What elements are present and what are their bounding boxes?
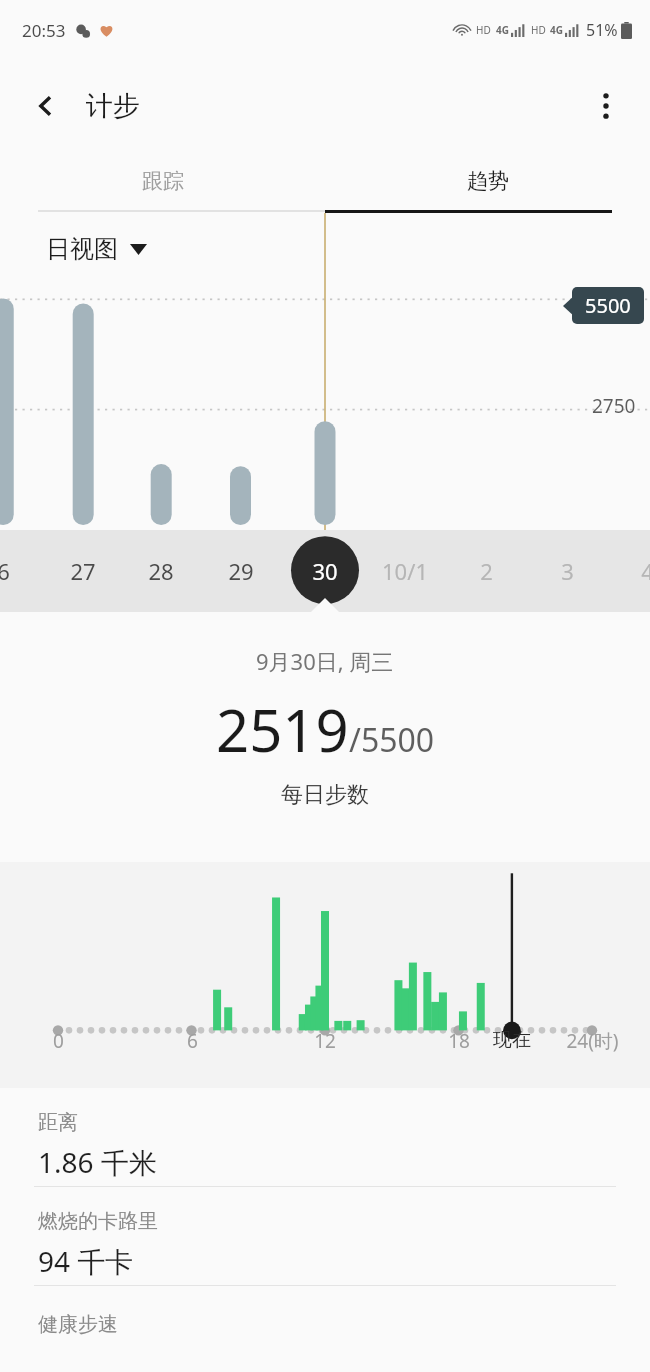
staticText: 计步 (86, 89, 140, 123)
staticText: HD (531, 23, 546, 37)
staticText: 2519 (216, 690, 349, 769)
staticText: 12 (314, 1028, 336, 1054)
staticText: 2750 (592, 393, 636, 419)
staticText: 6 (187, 1028, 198, 1054)
staticText: /5500 (349, 718, 435, 762)
staticText: 27 (70, 556, 96, 586)
button[interactable]: 4 (612, 530, 650, 612)
button[interactable]: 2 (451, 530, 521, 612)
button[interactable]: 跟踪 (0, 152, 325, 210)
staticText: 3 (561, 556, 574, 586)
staticText: HD (476, 23, 491, 37)
staticText: 9月30日, 周三 (256, 646, 394, 676)
staticText: 10/1 (382, 556, 428, 586)
button[interactable]: 30 (290, 530, 360, 612)
button[interactable]: 燃烧的卡路里 (0, 1187, 650, 1285)
button[interactable]: More options (584, 84, 628, 128)
staticText: 1.86 千米 (38, 1143, 157, 1181)
staticText: 4G (496, 23, 509, 37)
staticText: 0 (53, 1028, 64, 1054)
staticText: 51% (586, 19, 618, 41)
button[interactable]: 10/1 (370, 530, 440, 612)
staticText: 趋势 (467, 168, 509, 194)
staticText: 28 (148, 556, 174, 586)
staticText: 跟踪 (142, 168, 184, 194)
staticText: 5500 (585, 292, 631, 319)
button[interactable]: 3 (532, 530, 602, 612)
staticText: 距离 (38, 1110, 78, 1135)
button[interactable]: 健康步速 (0, 1286, 650, 1366)
button[interactable]: 27 (48, 530, 118, 612)
staticText: 6 (0, 556, 10, 586)
staticText: 现在 (493, 1028, 531, 1052)
staticText: 24(时) (566, 1028, 619, 1054)
button[interactable]: 日视图 (46, 234, 147, 264)
button[interactable]: 趋势 (325, 152, 650, 210)
button[interactable]: 28 (126, 530, 196, 612)
staticText: 4 (641, 556, 650, 586)
staticText: 94 千卡 (38, 1242, 134, 1280)
button[interactable]: Back (24, 84, 68, 128)
staticText: 日视图 (46, 234, 118, 264)
staticText: 燃烧的卡路里 (38, 1209, 158, 1234)
staticText: 每日步数 (281, 781, 369, 809)
staticText: 2 (480, 556, 493, 586)
staticText: 4G (550, 23, 563, 37)
staticText: 30 (312, 556, 338, 586)
button[interactable]: 距离 (0, 1088, 650, 1186)
staticText: 健康步速 (38, 1312, 118, 1337)
staticText: 29 (228, 556, 254, 586)
button[interactable]: 6 (0, 530, 38, 612)
staticText: 20:53 (22, 19, 66, 42)
staticText: 18 (448, 1028, 470, 1054)
button[interactable]: 29 (206, 530, 276, 612)
